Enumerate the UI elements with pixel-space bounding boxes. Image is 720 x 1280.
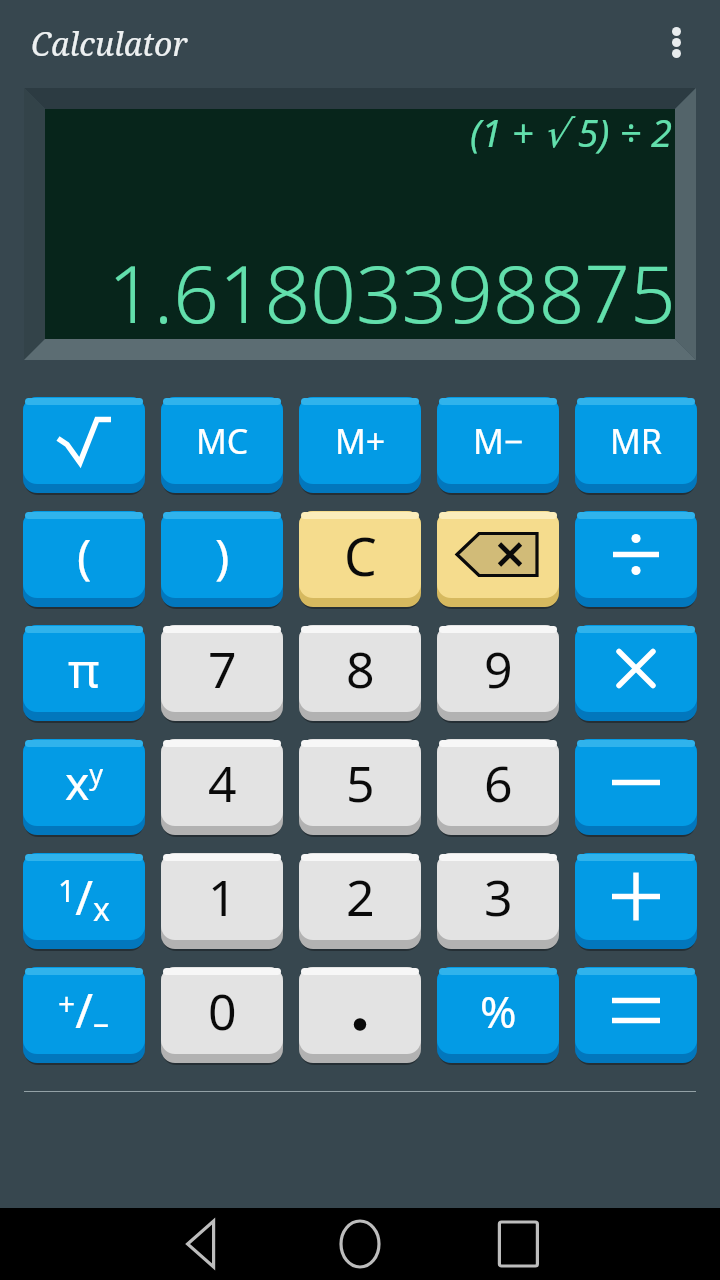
button[interactable]: Decimal point [299, 967, 421, 1063]
button[interactable]: 1 [161, 853, 283, 949]
button[interactable]: 6 [437, 739, 559, 835]
button[interactable]: 3 [437, 853, 559, 949]
staticText: 6 [484, 749, 513, 817]
button[interactable]: 2 [299, 853, 421, 949]
button[interactable]: ) [161, 511, 283, 607]
staticText: xy [65, 751, 104, 814]
staticText: MC [196, 418, 249, 464]
staticText: 3 [484, 863, 513, 931]
staticText: 5 [346, 749, 375, 817]
button[interactable]: Backspace [437, 511, 559, 607]
staticText: (1 + √ 5) ÷ 2 [470, 106, 672, 158]
staticText: % [480, 981, 517, 1041]
staticText: M− [473, 418, 524, 464]
button[interactable]: M+ [299, 397, 421, 493]
staticText: MR [610, 418, 662, 464]
button[interactable]: % [437, 967, 559, 1063]
button[interactable]: xy [23, 739, 145, 835]
button[interactable]: 9 [437, 625, 559, 721]
button[interactable]: 0 [161, 967, 283, 1063]
staticText: 7 [208, 635, 237, 703]
staticText: ( [77, 523, 92, 588]
staticText: M+ [335, 418, 386, 464]
button[interactable]: Divide [575, 511, 697, 607]
staticText: 2 [346, 863, 375, 931]
button[interactable]: 4 [161, 739, 283, 835]
button[interactable]: +/– [23, 967, 145, 1063]
staticText: 8 [346, 635, 375, 703]
button[interactable]: π [23, 625, 145, 721]
staticText: 1 [208, 863, 237, 931]
button[interactable]: MR [575, 397, 697, 493]
staticText: 4 [208, 749, 237, 817]
button[interactable]: 7 [161, 625, 283, 721]
button[interactable]: MC [161, 397, 283, 493]
button[interactable]: 1/x [23, 853, 145, 949]
staticText: Calculator [31, 22, 188, 66]
button[interactable]: Minus [575, 739, 697, 835]
button[interactable]: Multiply [575, 625, 697, 721]
staticText: 9 [484, 635, 513, 703]
staticText: C [344, 520, 377, 591]
button[interactable]: More options [646, 12, 706, 72]
button[interactable]: ( [23, 511, 145, 607]
staticText: ) [215, 523, 230, 588]
staticText: 0 [208, 977, 237, 1045]
button[interactable]: Plus [575, 853, 697, 949]
staticText: π [68, 637, 100, 702]
staticText: 1.61803398875 [108, 237, 676, 346]
staticText: +/– [58, 977, 110, 1045]
button[interactable]: Square root [23, 397, 145, 493]
button[interactable]: M− [437, 397, 559, 493]
button[interactable]: C [299, 511, 421, 607]
staticText: 1/x [58, 864, 110, 931]
button[interactable]: Equals [575, 967, 697, 1063]
button[interactable]: 8 [299, 625, 421, 721]
button[interactable]: 5 [299, 739, 421, 835]
